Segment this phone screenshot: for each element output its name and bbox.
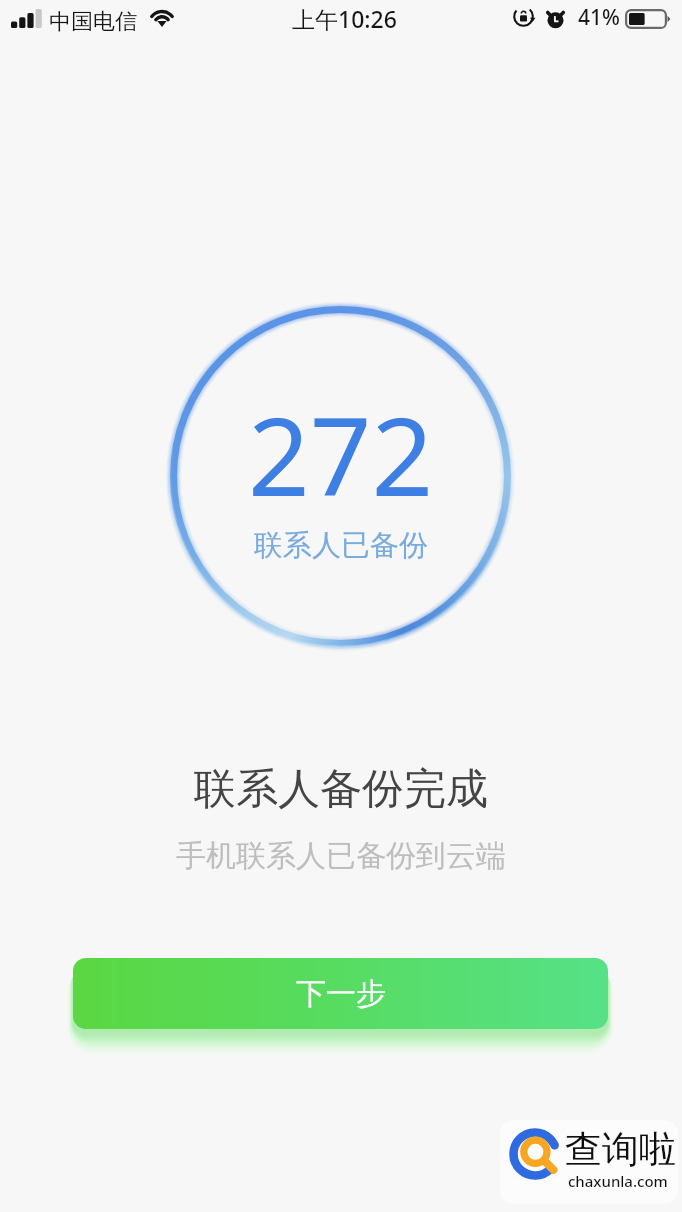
staticText: 中国电信 — [49, 8, 137, 36]
button[interactable]: 下一步 — [73, 958, 608, 1029]
staticText: 联系人备份完成 — [0, 763, 682, 816]
staticText: 41% — [578, 3, 620, 32]
staticText: chaxunla.com — [568, 1171, 668, 1191]
staticText: 272 — [248, 381, 434, 528]
other: Alarm — [546, 10, 568, 32]
staticText: 手机联系人已备份到云端 — [0, 837, 682, 875]
staticText: 查询啦 — [565, 1126, 676, 1173]
staticText: 上午10:26 — [292, 3, 397, 34]
other: Rotation lock — [512, 5, 535, 28]
staticText: 下一步 — [296, 975, 386, 1013]
staticText: 联系人已备份 — [254, 527, 428, 564]
